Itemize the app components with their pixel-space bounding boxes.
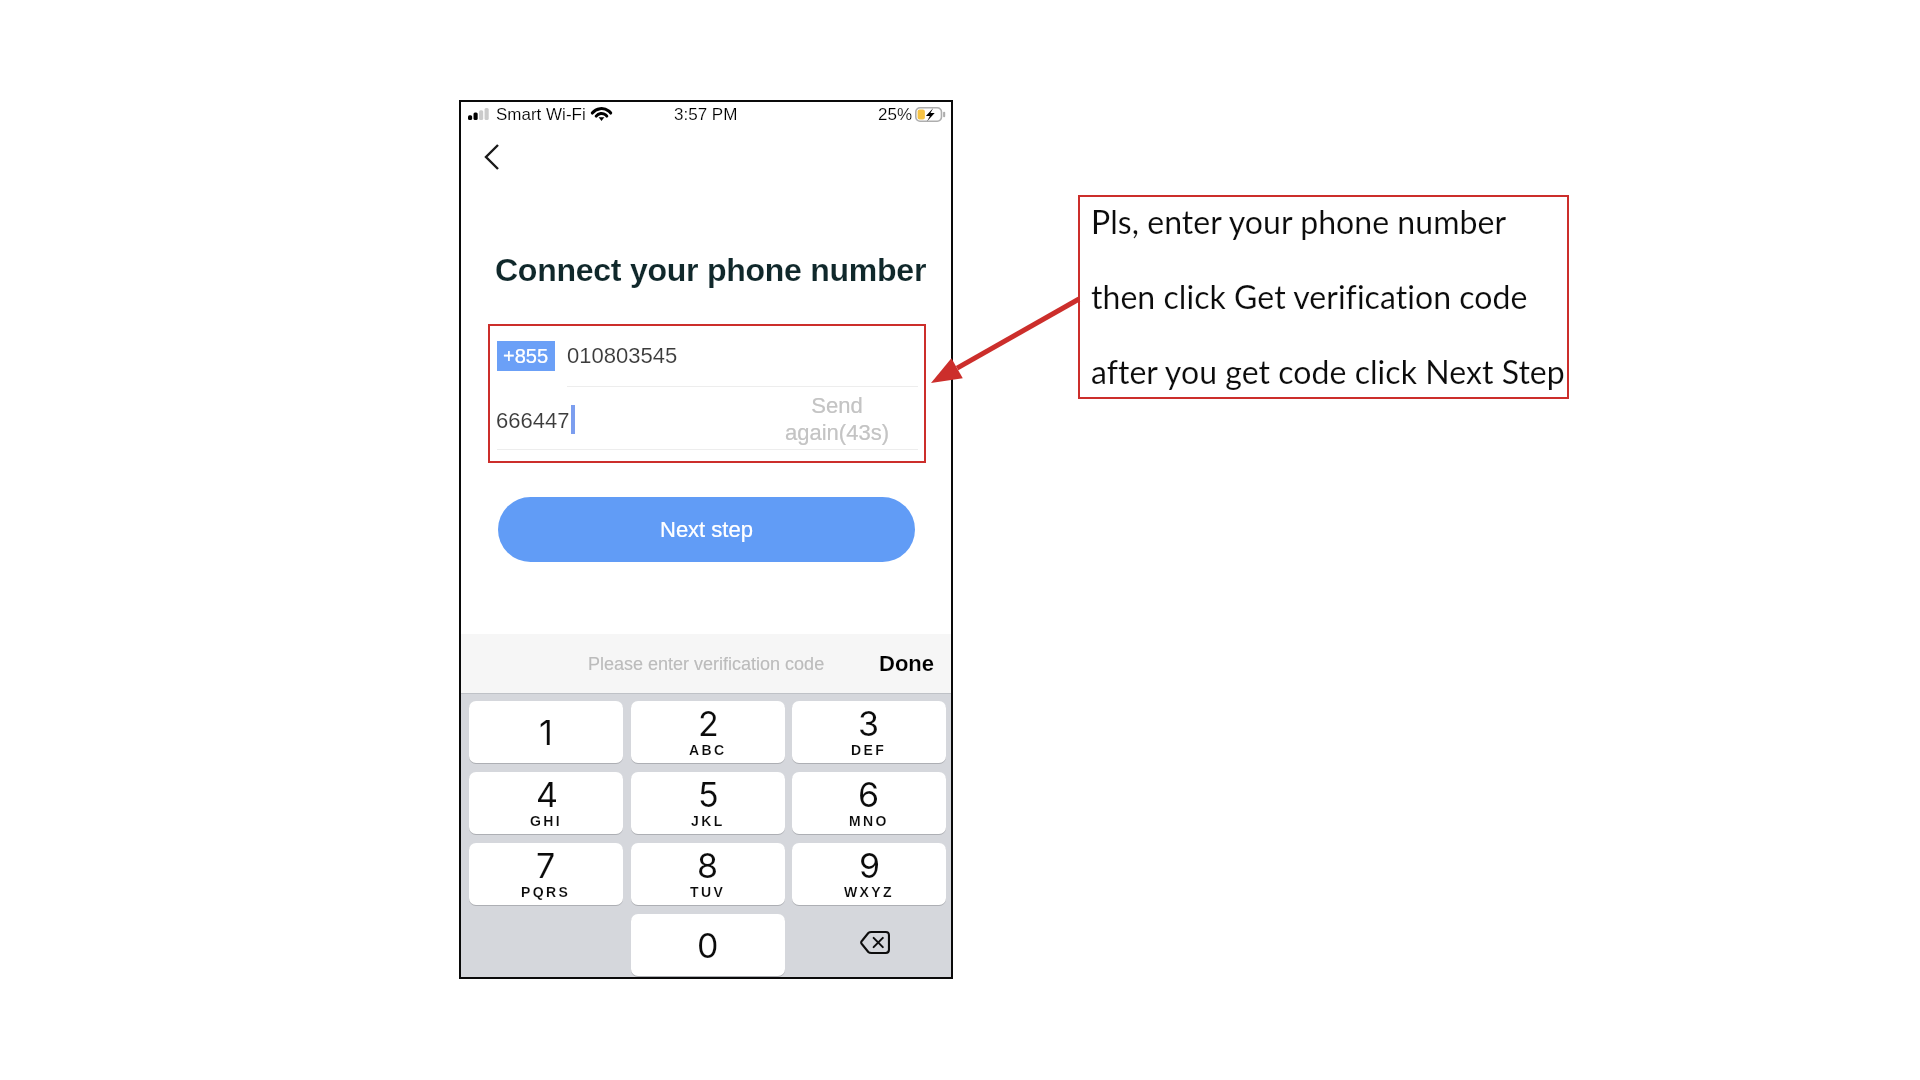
button[interactable]: Send again(43s) [767, 393, 907, 444]
staticText: Pls, enter your phone number [1091, 202, 1582, 240]
staticText: 9 [859, 845, 881, 886]
staticText: PQRS [521, 884, 571, 900]
button[interactable]: 0 [631, 914, 785, 976]
staticText: +855 [503, 345, 549, 367]
button[interactable]: 5 [631, 772, 785, 834]
staticText: 4 [536, 774, 558, 815]
button[interactable]: 6 [792, 772, 946, 834]
staticText: 1 [539, 712, 553, 753]
staticText: 8 [697, 845, 719, 886]
staticText: GHI [530, 813, 563, 829]
staticText: Next step [660, 517, 753, 542]
staticText: 6 [858, 774, 880, 815]
staticText: Smart Wi-Fi [496, 105, 586, 124]
staticText: after you get code click Next Step [1091, 352, 1582, 390]
staticText: Done [879, 651, 934, 676]
staticText: JKL [691, 813, 725, 829]
button[interactable]: 2 [631, 701, 785, 763]
button[interactable]: 1 [469, 701, 623, 763]
button[interactable]: 3 [792, 701, 946, 763]
staticText: 25% [878, 105, 913, 124]
staticText: 666447 [496, 408, 570, 433]
button[interactable]: 010803545 [563, 334, 918, 379]
staticText: then click Get verification code [1091, 277, 1582, 315]
staticText: 3 [858, 703, 880, 744]
staticText: WXYZ [844, 884, 895, 900]
button[interactable]: 8 [631, 843, 785, 905]
staticText: Send again(43s) [767, 393, 907, 444]
button[interactable]: Next step [498, 497, 915, 562]
button[interactable]: 7 [469, 843, 623, 905]
button[interactable]: 9 [792, 843, 946, 905]
staticText: 2 [698, 703, 719, 744]
button[interactable]: Backspace [792, 914, 946, 976]
staticText: ABC [689, 742, 727, 758]
staticText: DEF [851, 742, 887, 758]
button[interactable]: 666447 [492, 396, 742, 444]
staticText: 5 [698, 774, 719, 815]
staticText: 0 [697, 925, 719, 966]
staticText: 7 [536, 845, 556, 886]
staticText: TUV [690, 884, 726, 900]
button[interactable]: Back [470, 135, 514, 179]
button[interactable]: +855 [497, 341, 555, 371]
staticText: 010803545 [567, 343, 678, 368]
staticText: Please enter verification code [588, 654, 825, 674]
staticText: MNO [849, 813, 889, 829]
button[interactable]: Done [879, 651, 934, 676]
staticText: 3:57 PM [674, 105, 738, 124]
button[interactable]: 4 [469, 772, 623, 834]
staticText: Connect your phone number [495, 252, 927, 288]
